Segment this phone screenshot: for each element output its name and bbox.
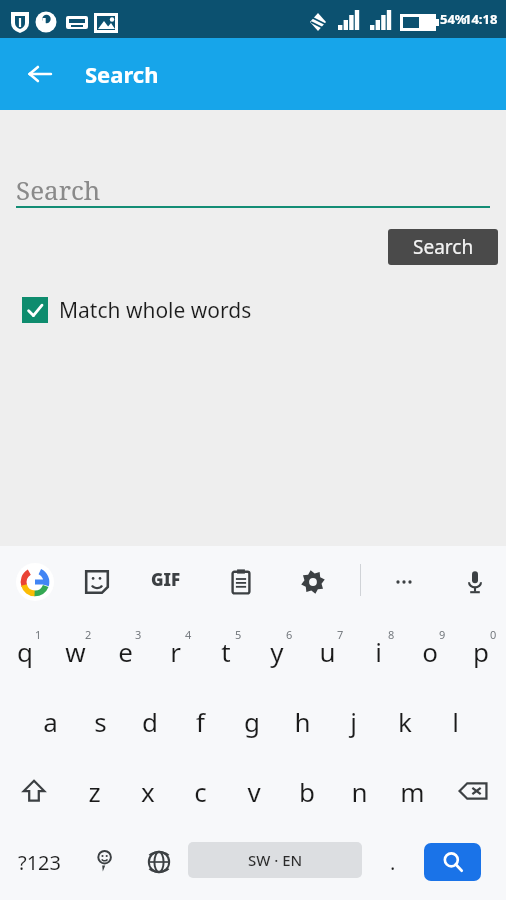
- button[interactable]: v: [227, 756, 280, 826]
- staticText: .: [390, 849, 396, 876]
- button[interactable]: SW · EN: [188, 842, 362, 878]
- staticText: 5: [235, 627, 242, 642]
- staticText: e: [118, 634, 133, 669]
- button[interactable]: Clipboard: [222, 563, 260, 601]
- staticText: 0: [490, 627, 497, 642]
- button[interactable]: j: [328, 686, 379, 756]
- button[interactable]: Settings: [294, 563, 332, 601]
- button[interactable]: k: [379, 686, 430, 756]
- staticText: h: [294, 704, 311, 739]
- staticText: b: [299, 774, 315, 809]
- staticText: w: [65, 634, 86, 669]
- button[interactable]: w: [50, 616, 100, 686]
- staticText: Search: [85, 59, 159, 89]
- button[interactable]: ?123: [0, 826, 78, 898]
- button[interactable]: a: [25, 686, 75, 756]
- button[interactable]: More options: [385, 563, 423, 601]
- button[interactable]: Voice input: [456, 563, 494, 601]
- staticText: Search: [413, 234, 474, 260]
- staticText: 14:18: [464, 10, 498, 28]
- staticText: 8: [388, 627, 395, 642]
- button[interactable]: f: [175, 686, 226, 756]
- button[interactable]: s: [75, 686, 125, 756]
- button[interactable]: p: [455, 616, 506, 686]
- button[interactable]: g: [226, 686, 277, 756]
- staticText: g: [244, 704, 260, 739]
- staticText: p: [473, 634, 489, 669]
- button[interactable]: GIF: [151, 568, 181, 591]
- staticText: i: [375, 634, 382, 669]
- button[interactable]: Stickers: [78, 563, 116, 601]
- button[interactable]: Search: [388, 229, 498, 265]
- staticText: 3: [135, 627, 142, 642]
- staticText: x: [141, 774, 155, 809]
- button[interactable]: x: [121, 756, 174, 826]
- button[interactable]: z: [68, 756, 121, 826]
- staticText: v: [247, 774, 261, 809]
- button[interactable]: Match whole words: [0, 286, 506, 334]
- staticText: 4: [185, 627, 192, 642]
- staticText: r: [170, 634, 181, 669]
- staticText: 6: [286, 627, 293, 642]
- button[interactable]: Search: [424, 843, 481, 881]
- staticText: 1: [35, 627, 42, 642]
- button[interactable]: c: [174, 756, 227, 826]
- staticText: u: [319, 634, 336, 669]
- button[interactable]: q: [0, 616, 50, 686]
- staticText: f: [196, 704, 205, 739]
- button[interactable]: .: [362, 826, 424, 898]
- staticText: Search: [16, 172, 101, 207]
- button[interactable]: i: [353, 616, 404, 686]
- button[interactable]: Google: [15, 562, 55, 602]
- button[interactable]: h: [277, 686, 328, 756]
- staticText: m: [400, 774, 425, 809]
- staticText: l: [452, 704, 459, 739]
- staticText: k: [398, 704, 412, 739]
- button[interactable]: Shift: [0, 756, 68, 826]
- button[interactable]: m: [386, 756, 439, 826]
- staticText: n: [351, 774, 368, 809]
- staticText: SW · EN: [248, 850, 303, 870]
- staticText: y: [270, 634, 284, 669]
- button[interactable]: n: [333, 756, 386, 826]
- button[interactable]: r: [150, 616, 200, 686]
- button[interactable]: u: [302, 616, 353, 686]
- button[interactable]: l: [430, 686, 481, 756]
- button[interactable]: Change language: [130, 826, 188, 898]
- button[interactable]: Backspace: [439, 756, 506, 826]
- staticText: 7: [337, 627, 344, 642]
- staticText: j: [350, 704, 357, 739]
- staticText: Match whole words: [59, 296, 252, 325]
- staticText: d: [142, 704, 158, 739]
- staticText: s: [94, 704, 107, 739]
- button[interactable]: d: [125, 686, 175, 756]
- button[interactable]: e: [100, 616, 150, 686]
- button[interactable]: Emoji and comma: [78, 826, 130, 898]
- staticText: 54%: [440, 10, 467, 28]
- button[interactable]: t: [200, 616, 251, 686]
- button[interactable]: y: [251, 616, 302, 686]
- button[interactable]: Back: [18, 52, 62, 96]
- staticText: ?123: [18, 849, 61, 876]
- staticText: t: [221, 634, 231, 669]
- staticText: z: [88, 774, 101, 809]
- staticText: 2: [85, 627, 92, 642]
- staticText: o: [422, 634, 438, 669]
- button[interactable]: b: [280, 756, 333, 826]
- staticText: a: [43, 704, 58, 739]
- staticText: q: [17, 634, 33, 669]
- staticText: 9: [439, 627, 446, 642]
- button[interactable]: o: [404, 616, 455, 686]
- staticText: c: [194, 774, 207, 809]
